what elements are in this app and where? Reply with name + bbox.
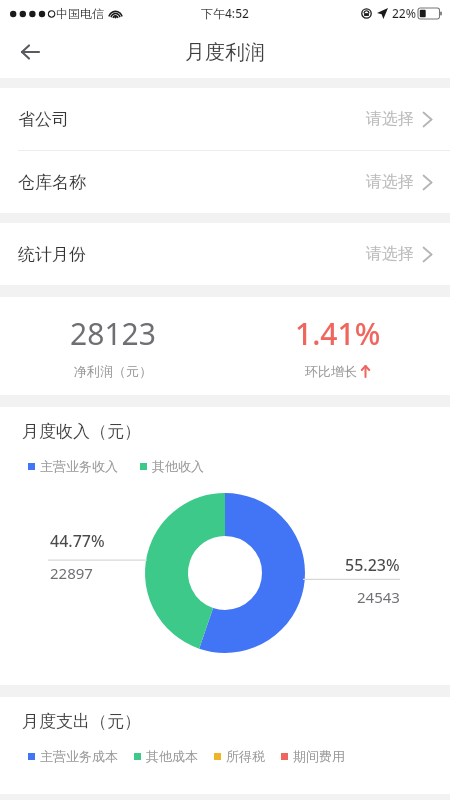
staticText: 省公司 [18, 109, 69, 130]
staticText: 其他收入 [152, 458, 204, 474]
staticText: 仓库名称 [18, 172, 86, 193]
staticText: 期间费用 [293, 748, 345, 764]
staticText: 请选择 [366, 109, 414, 129]
staticText: 22897 [50, 563, 93, 583]
staticText: 净利润（元） [74, 363, 152, 379]
button[interactable]: 仓库名称 [0, 151, 450, 213]
staticText: 所得税 [226, 748, 265, 764]
staticText: 1.41% [295, 313, 381, 354]
button[interactable]: Back [8, 30, 52, 74]
staticText: 主营业务收入 [40, 458, 118, 474]
staticText: 28123 [70, 313, 156, 354]
staticText: 请选择 [366, 172, 414, 192]
staticText: 月度支出（元） [22, 711, 141, 732]
staticText: 55.23% [345, 554, 400, 576]
staticText: 月度利润 [185, 40, 265, 65]
staticText: 下午4:52 [201, 5, 249, 21]
button[interactable]: 省公司 [0, 88, 450, 150]
staticText: 中国电信 [56, 6, 104, 21]
staticText: 24543 [357, 587, 400, 607]
staticText: 环比增长 [305, 363, 357, 379]
button[interactable]: 统计月份 [0, 223, 450, 285]
staticText: 统计月份 [18, 244, 86, 265]
staticText: 主营业务成本 [40, 748, 118, 764]
staticText: 22% [392, 5, 416, 21]
staticText: 其他成本 [146, 748, 198, 764]
staticText: 请选择 [366, 244, 414, 264]
staticText: 44.77% [50, 530, 105, 552]
staticText: 月度收入（元） [22, 421, 141, 442]
